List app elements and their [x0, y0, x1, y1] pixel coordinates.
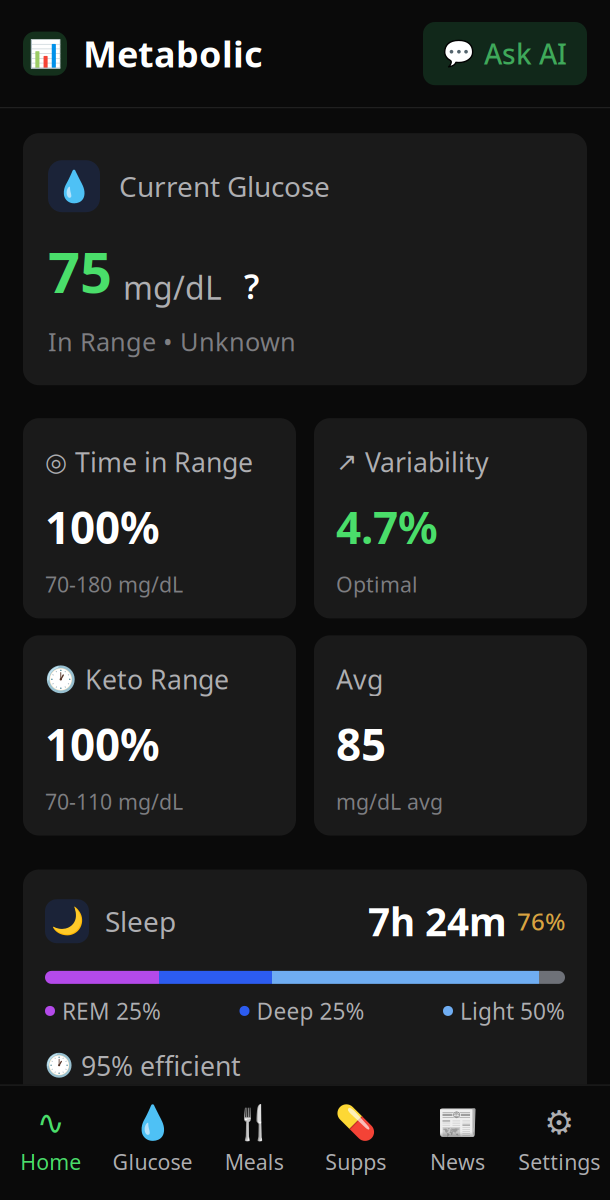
staticText: ? [244, 264, 259, 309]
staticText: In Range • Unknown [48, 324, 296, 358]
staticText: 🕐 [45, 1053, 73, 1079]
staticText: 🌙 [50, 906, 83, 936]
staticText: Variability [365, 444, 489, 480]
button[interactable]: ◎ [23, 418, 296, 618]
staticText: 100% [45, 498, 160, 556]
button[interactable]: 🌙 [23, 869, 587, 1107]
staticText: 💧 [131, 1104, 173, 1142]
staticText: News [430, 1148, 485, 1176]
staticText: Light 50% [460, 996, 565, 1026]
staticText: 100% [45, 715, 160, 773]
staticText: ◎ [45, 447, 67, 476]
staticText: Settings [518, 1147, 600, 1176]
button[interactable]: 🔥 [23, 1132, 587, 1200]
staticText: ∿ [37, 1104, 65, 1141]
button[interactable]: 💧 [23, 133, 587, 385]
staticText: 70-180 mg/dL [45, 570, 183, 598]
staticText: ↗ [336, 447, 357, 476]
button[interactable]: 🕐 [23, 635, 296, 836]
button[interactable]: ∿ [0, 1094, 102, 1186]
staticText: 85 [336, 715, 386, 773]
staticText: Meals [225, 1148, 284, 1176]
staticText: 7h 24m [368, 895, 507, 947]
button[interactable]: 📰 [407, 1094, 508, 1186]
button[interactable]: 🍴 [203, 1094, 305, 1186]
staticText: 📊 [28, 38, 61, 69]
button[interactable]: ↗ [314, 418, 587, 618]
staticText: 📰 [436, 1104, 478, 1142]
staticText: Deep 25% [256, 996, 364, 1026]
staticText: 💊 [335, 1104, 377, 1142]
staticText: 💧 [55, 169, 93, 204]
staticText: Optimal [336, 570, 418, 598]
staticText: 4.7% [336, 498, 438, 556]
staticText: ⚙ [544, 1104, 574, 1141]
staticText: 76% [517, 905, 565, 937]
staticText: Glucose [112, 1148, 192, 1176]
staticText: REM 25% [62, 996, 161, 1026]
staticText: 70-110 mg/dL [45, 787, 183, 815]
staticText: 🕐 [45, 665, 77, 693]
button[interactable]: 💬 [423, 22, 587, 85]
staticText: Supps [325, 1148, 386, 1176]
staticText: Metabolic [83, 30, 263, 77]
staticText: Home [20, 1147, 81, 1176]
staticText: mg/dL avg [336, 787, 443, 815]
staticText: mg/dL [123, 266, 222, 309]
staticText: Current Glucose [119, 168, 330, 205]
staticText: 75 [48, 234, 112, 309]
staticText: Sleep [105, 903, 176, 940]
staticText: 🍴 [233, 1104, 275, 1142]
button[interactable]: Avg [314, 635, 587, 836]
staticText: Avg [336, 661, 383, 697]
staticText: Time in Range [75, 444, 253, 480]
staticText: 💬 [443, 39, 475, 68]
staticText: 12.8 [474, 1158, 565, 1200]
button[interactable]: 💧 [102, 1094, 203, 1186]
staticText: 95% efficient [81, 1048, 241, 1083]
button[interactable]: ⚙ [508, 1094, 610, 1186]
staticText: Ask AI [484, 35, 567, 72]
button[interactable]: 💊 [305, 1094, 407, 1186]
staticText: Keto Range [85, 661, 229, 697]
